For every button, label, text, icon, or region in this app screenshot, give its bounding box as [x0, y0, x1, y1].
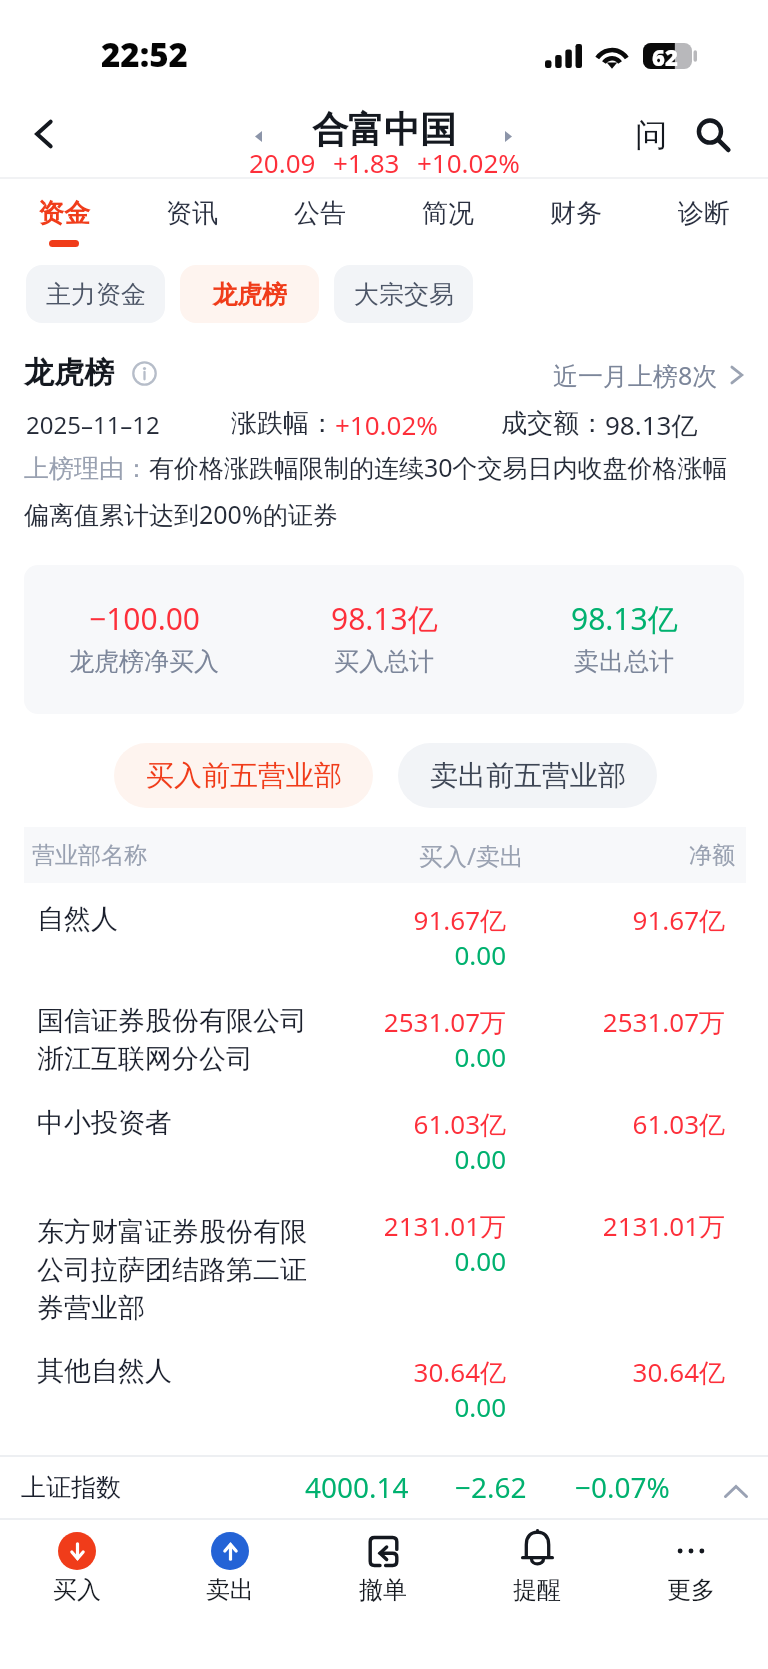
staticText: 成交额：: [501, 407, 605, 440]
button[interactable]: 提醒: [460, 1519, 614, 1617]
staticText: 上证指数: [21, 1472, 121, 1503]
button[interactable]: 诊断: [640, 178, 768, 250]
staticText: 财务: [550, 197, 602, 230]
staticText: 买入总计: [334, 646, 434, 677]
button[interactable]: 大宗交易: [334, 265, 473, 323]
staticText: 卖出前五营业部: [430, 758, 626, 793]
staticText: 资金: [38, 197, 90, 230]
staticText: 中小投资者: [37, 1106, 172, 1140]
staticText: +10.02%: [417, 145, 520, 180]
button[interactable]: 近一月上榜8次: [553, 358, 745, 392]
staticText: 上榜理由：有价格涨跌幅限制的连续30个交易日内收盘价格涨幅偏离值累计达到200%…: [24, 450, 748, 532]
staticText: 公告: [294, 197, 346, 230]
staticText: 简况: [422, 197, 474, 230]
staticText: 合富中国: [312, 107, 456, 152]
button[interactable]: 买入: [0, 1519, 153, 1617]
staticText: 买入: [53, 1575, 101, 1605]
button[interactable]: 卖出: [153, 1519, 306, 1617]
staticText: 61.03亿: [505, 1106, 725, 1142]
staticText: 净额: [689, 841, 735, 870]
button[interactable]: 卖出前五营业部: [398, 743, 657, 808]
staticText: −0.07%: [575, 1468, 670, 1506]
staticText: −2.62: [455, 1468, 527, 1506]
staticText: 诊断: [678, 197, 730, 230]
staticText: 龙虎榜: [24, 354, 114, 392]
staticText: 国信证券股份有限公司 浙江互联网分公司: [37, 1004, 307, 1076]
staticText: 22:52: [101, 32, 188, 77]
staticText: 其他自然人: [37, 1354, 172, 1388]
staticText: 资讯: [166, 197, 218, 230]
staticText: 98.13亿: [571, 598, 678, 639]
staticText: 自然人: [37, 902, 118, 936]
staticText: 2131.01万: [505, 1208, 725, 1244]
staticText: 30.64亿 0.00: [256, 1354, 506, 1424]
button[interactable]: Back: [9, 100, 77, 168]
staticText: 4000.14: [305, 1468, 409, 1506]
staticText: 2131.01万 0.00: [256, 1208, 506, 1278]
staticText: 涨跌幅：: [231, 407, 335, 440]
staticText: 近一月上榜8次: [553, 358, 718, 392]
button[interactable]: 主力资金: [26, 265, 165, 323]
button[interactable]: 财务: [512, 178, 640, 250]
staticText: 东方财富证券股份有限 公司拉萨团结路第二证 券营业部: [37, 1215, 307, 1325]
staticText: 20.09: [249, 145, 316, 180]
button[interactable]: 国信证券股份有限公司 浙江互联网分公司: [0, 991, 768, 1093]
staticText: 98.13亿: [605, 407, 698, 443]
staticText: 2531.07万: [505, 1004, 725, 1040]
button[interactable]: 更多: [614, 1519, 768, 1617]
staticText: 98.13亿: [331, 598, 438, 639]
staticText: 龙虎榜: [212, 279, 287, 310]
staticText: 2025–11–12: [26, 408, 160, 441]
staticText: 91.67亿 0.00: [256, 902, 506, 972]
button[interactable]: 简况: [384, 178, 512, 250]
staticText: +10.02%: [335, 407, 438, 442]
button[interactable]: 上证指数: [0, 1456, 768, 1518]
button[interactable]: 中小投资者: [0, 1093, 768, 1195]
staticText: 龙虎榜净买入: [69, 646, 219, 677]
staticText: 61.03亿 0.00: [256, 1106, 506, 1176]
button[interactable]: 其他自然人: [0, 1341, 768, 1443]
staticText: 卖出: [206, 1575, 254, 1605]
button[interactable]: Search: [682, 104, 744, 166]
staticText: 营业部名称: [32, 841, 147, 870]
staticText: 更多: [667, 1575, 715, 1605]
staticText: −100.00: [89, 598, 200, 639]
staticText: 62: [652, 42, 678, 68]
staticText: 买入前五营业部: [146, 758, 342, 793]
staticText: +1.83: [333, 145, 400, 180]
button[interactable]: 公告: [256, 178, 384, 250]
button[interactable]: 撤单: [306, 1519, 460, 1617]
button[interactable]: 资讯: [128, 178, 256, 250]
staticText: 大宗交易: [354, 279, 454, 310]
button[interactable]: 龙虎榜: [180, 265, 319, 323]
button[interactable]: 自然人: [0, 889, 768, 991]
button[interactable]: 买入前五营业部: [114, 743, 373, 808]
staticText: 撤单: [359, 1575, 407, 1605]
staticText: 2531.07万 0.00: [256, 1004, 506, 1074]
staticText: 卖出总计: [574, 646, 674, 677]
button[interactable]: Ask: [620, 104, 682, 166]
staticText: 问: [635, 115, 667, 155]
button[interactable]: 资金: [0, 178, 128, 250]
button[interactable]: 东方财富证券股份有限 公司拉萨团结路第二证 券营业部: [0, 1195, 768, 1341]
staticText: 买入/卖出: [419, 839, 524, 872]
staticText: 提醒: [513, 1575, 561, 1605]
staticText: 30.64亿: [505, 1354, 725, 1390]
staticText: 主力资金: [46, 279, 146, 310]
staticText: 91.67亿: [505, 902, 725, 938]
